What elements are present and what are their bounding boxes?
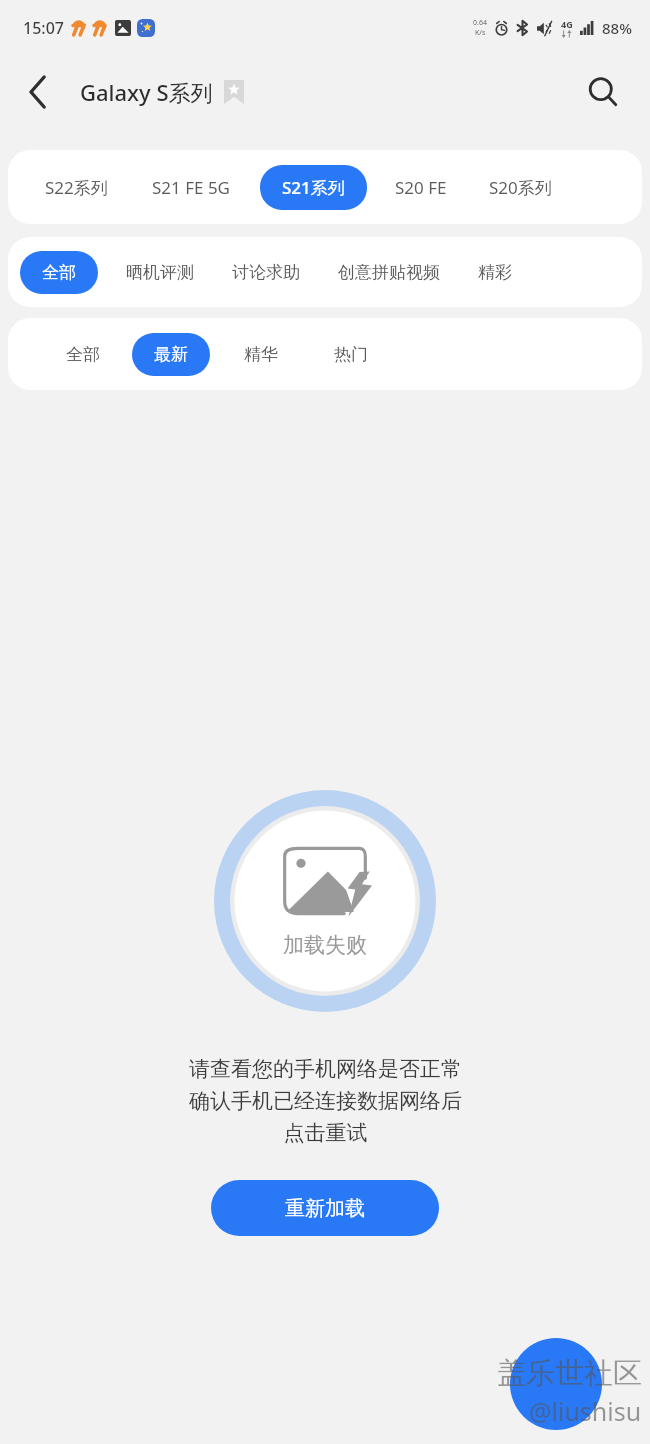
button[interactable]: 重新加载 <box>211 1180 439 1236</box>
staticText: 盖乐世社区 <box>497 1355 642 1392</box>
staticText: 晒机评测 <box>126 262 194 283</box>
staticText: S21 FE 5G <box>152 176 230 199</box>
staticText: 精彩 <box>478 262 512 283</box>
button[interactable]: S21系列 <box>260 165 367 210</box>
staticText: 创意拼贴视频 <box>338 262 440 283</box>
button[interactable]: 全部 <box>20 251 98 294</box>
staticText: 4G <box>561 18 573 30</box>
staticText: S20 FE <box>395 176 447 199</box>
staticText: 请查看您的手机网络是否正常 确认手机已经连接数据网络后 点击重试 <box>189 1056 462 1146</box>
staticText: 最新 <box>154 344 188 365</box>
staticText: 0.64 <box>473 18 487 28</box>
button[interactable]: 精彩 <box>468 254 522 291</box>
staticText: S21系列 <box>282 176 345 199</box>
button[interactable]: 讨论求助 <box>222 254 310 291</box>
button[interactable]: Search <box>576 65 630 119</box>
staticText: S22系列 <box>45 176 108 199</box>
button[interactable]: 精华 <box>234 336 288 373</box>
button[interactable]: 最新 <box>132 333 210 376</box>
staticText: S20系列 <box>489 176 552 199</box>
staticText: 讨论求助 <box>232 262 300 283</box>
staticText: 全部 <box>42 262 76 283</box>
button[interactable]: S20系列 <box>479 168 562 207</box>
button[interactable]: 热门 <box>324 336 378 373</box>
button[interactable]: S22系列 <box>35 168 118 207</box>
staticText: Galaxy S系列 <box>80 77 213 107</box>
button[interactable]: S20 FE <box>385 168 457 207</box>
staticText: 15:07 <box>23 17 64 39</box>
staticText: 88% <box>602 18 632 38</box>
button[interactable]: S21 FE 5G <box>142 168 240 207</box>
staticText: K/s <box>475 28 486 38</box>
button[interactable]: 晒机评测 <box>116 254 204 291</box>
button[interactable]: Back <box>12 66 64 118</box>
staticText: 热门 <box>334 344 368 365</box>
staticText: 重新加载 <box>285 1196 365 1221</box>
staticText: 精华 <box>244 344 278 365</box>
staticText: 加载失败 <box>283 932 367 958</box>
button[interactable]: Compose <box>510 1338 602 1430</box>
staticText: @liushisu <box>529 1394 642 1428</box>
staticText: 全部 <box>66 344 100 365</box>
button[interactable]: 全部 <box>56 336 110 373</box>
button[interactable]: 创意拼贴视频 <box>328 254 450 291</box>
